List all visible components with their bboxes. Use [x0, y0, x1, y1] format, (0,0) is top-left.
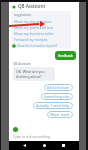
- button[interactable]: Show my business miles: [11, 30, 71, 36]
- button[interactable]: Show my top expenses: [11, 18, 71, 24]
- button[interactable]: Back: [9, 2, 79, 10]
- button[interactable]: Forward my receipts: [11, 36, 71, 42]
- staticText: OK. What are you thinking about?: [16, 69, 52, 79]
- button[interactable]: Recents: [60, 142, 67, 149]
- button[interactable]: Never mind: [47, 111, 73, 118]
- staticText: Something else: [44, 94, 70, 99]
- staticText: suggestions: [14, 13, 32, 17]
- staticText: Show my profit and loss: [14, 25, 54, 30]
- button[interactable]: Show my profit and loss: [11, 24, 71, 30]
- staticText: Show my top expenses: [14, 19, 52, 24]
- button[interactable]: OK. What are you thinking about?: [13, 67, 55, 81]
- staticText: How do I email a report?: [17, 43, 58, 48]
- button[interactable]: How do I email a report?: [11, 42, 71, 48]
- staticText: Type or ask something: [13, 134, 51, 139]
- staticText: Never mind: [50, 112, 70, 117]
- button[interactable]: Back: [11, 4, 16, 9]
- button[interactable]: feedback: [55, 51, 76, 60]
- staticText: Add a feature: [47, 85, 70, 90]
- button[interactable]: Back: [21, 142, 28, 149]
- button[interactable]: Home: [41, 142, 48, 149]
- staticText: Show my business miles: [14, 31, 54, 36]
- staticText: Actually, I need help: [36, 103, 70, 108]
- staticText: QB Assistant: [18, 3, 46, 9]
- button[interactable]: Something else: [41, 93, 73, 100]
- button[interactable]: Actually, I need help: [33, 102, 73, 109]
- staticText: Forward my receipts: [14, 37, 48, 42]
- button[interactable]: Type or ask something: [9, 132, 79, 141]
- button[interactable]: Add: [12, 126, 18, 132]
- button[interactable]: Add a feature: [44, 84, 73, 91]
- staticText: feedback: [58, 53, 73, 58]
- staticText: QB Assistant: [13, 62, 31, 66]
